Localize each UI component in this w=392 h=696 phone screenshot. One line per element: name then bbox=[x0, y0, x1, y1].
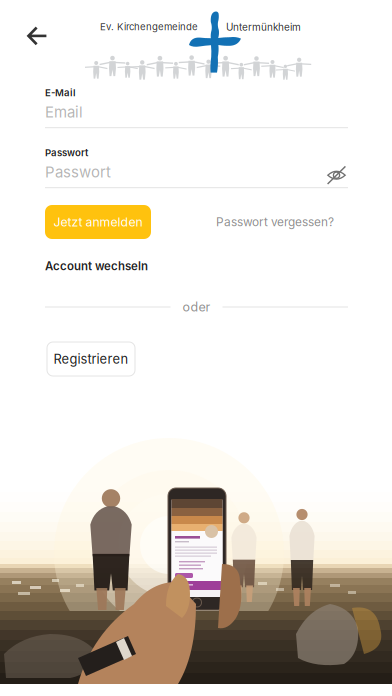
button[interactable]: Passwort anzeigen bbox=[325, 164, 348, 187]
staticText: Passwort bbox=[45, 163, 111, 181]
button[interactable]: Registrieren bbox=[47, 342, 135, 376]
button[interactable]: Zurück bbox=[18, 17, 56, 55]
staticText: Jetzt anmelden bbox=[53, 215, 142, 229]
staticText: Ev. Kirchengemeinde bbox=[100, 21, 198, 33]
button[interactable]: Account wechseln bbox=[45, 255, 148, 277]
staticText: Passwort bbox=[45, 147, 88, 159]
button[interactable]: Passwort vergessen? bbox=[216, 205, 348, 239]
button[interactable]: Jetzt anmelden bbox=[45, 205, 151, 239]
staticText: oder bbox=[182, 299, 210, 315]
staticText: Passwort vergessen? bbox=[216, 215, 334, 229]
staticText: Untermünkheim bbox=[226, 21, 301, 33]
staticText: E-Mail bbox=[45, 87, 76, 99]
staticText: Registrieren bbox=[53, 351, 128, 367]
staticText: Account wechseln bbox=[45, 259, 148, 273]
staticText: Email bbox=[45, 103, 83, 121]
